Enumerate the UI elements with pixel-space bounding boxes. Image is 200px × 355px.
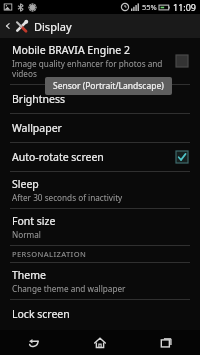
staticText: Mobile BRAVIA Engine 2 [12,43,130,57]
button[interactable]: Back [0,330,66,355]
button[interactable]: Sleep [0,172,200,208]
staticText: Sleep [12,177,39,191]
staticText: 11:09 [173,1,197,13]
button[interactable]: Font size [0,209,200,245]
button[interactable]: Lock screen [0,300,200,328]
button[interactable]: Mobile BRAVIA Engine 2 [0,38,200,84]
staticText: Display [34,19,72,34]
staticText: Sensor (Portrait/Landscape) [53,80,164,92]
staticText: Theme [12,268,46,282]
staticText: Lock screen [12,307,200,321]
staticText: PERSONALIZATION [12,249,87,259]
staticText: Auto-rotate screen [12,150,176,164]
button[interactable]: Home [66,330,133,355]
button[interactable]: Back to Display settings [0,14,200,38]
staticText: Image quality enhancer for photos and vi… [12,58,170,79]
button[interactable]: Auto-rotate screen [0,143,200,171]
staticText: After 30 seconds of inactivity [12,192,123,203]
button[interactable]: Recent apps [133,330,200,355]
staticText: Font size [12,214,56,228]
staticText: Brightness [12,92,200,106]
staticText: 55% [142,2,157,12]
staticText: Wallpaper [12,121,200,135]
staticText: Normal [12,229,41,240]
button[interactable]: Theme [0,263,200,299]
button[interactable]: Wallpaper [0,114,200,142]
button[interactable]: Brightness [0,85,200,113]
staticText: Change theme and wallpaper [12,283,126,294]
